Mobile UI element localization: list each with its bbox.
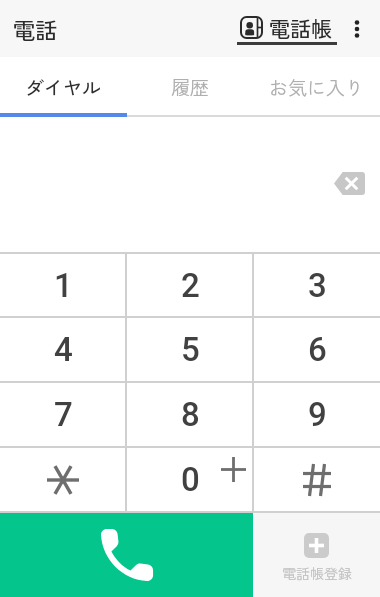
staticText: 3 (308, 266, 327, 305)
button[interactable]: 2 (127, 254, 253, 316)
staticText: 履歴 (171, 73, 210, 101)
button[interactable]: お気に入り (253, 57, 380, 117)
button[interactable]: 履歴 (127, 57, 253, 117)
button[interactable] (330, 168, 369, 199)
staticText: ダイヤル (25, 73, 102, 101)
button[interactable] (254, 448, 380, 511)
button[interactable]: 電話帳登録 (253, 513, 380, 597)
button[interactable]: 3 (254, 254, 380, 316)
staticText: 4 (54, 330, 73, 369)
staticText: 6 (308, 330, 327, 369)
button[interactable]: 7 (0, 383, 126, 445)
staticText: 7 (54, 395, 73, 434)
button[interactable]: 9 (254, 383, 380, 445)
staticText: 2 (181, 266, 200, 305)
button[interactable]: ダイヤル (0, 57, 127, 117)
button[interactable]: 6 (254, 318, 380, 380)
button[interactable]: 1 (0, 254, 126, 316)
staticText: 5 (181, 330, 200, 369)
staticText: 1 (54, 266, 73, 305)
staticText: 0 (181, 460, 200, 499)
button[interactable] (0, 448, 126, 511)
button[interactable] (0, 513, 253, 597)
staticText: 8 (181, 395, 200, 434)
staticText: お気に入り (269, 73, 365, 101)
button[interactable]: 0 (127, 448, 253, 511)
staticText: 電話帳登録 (282, 563, 352, 583)
button[interactable] (346, 11, 368, 47)
button[interactable]: 5 (127, 318, 253, 380)
staticText: 電話帳 (269, 13, 332, 43)
staticText: 電話 (13, 13, 58, 45)
button[interactable]: 電話帳 (234, 8, 340, 50)
staticText: 9 (308, 395, 327, 434)
button[interactable]: 8 (127, 383, 253, 445)
button[interactable]: 4 (0, 318, 126, 380)
